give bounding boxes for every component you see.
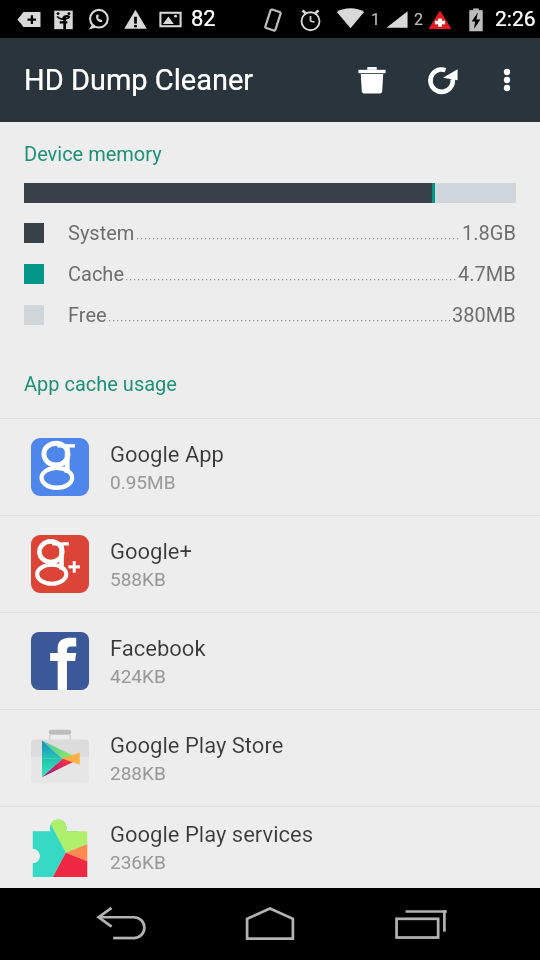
staticText: Google+ [110,539,192,565]
staticText: 288KB [110,762,166,784]
button[interactable]: Delete cache [348,56,396,104]
staticText: Google App [110,442,224,468]
staticText: 2 [414,10,423,29]
staticText: 1.8GB [462,221,516,244]
button[interactable]: Google App [0,419,540,515]
staticText: App cache usage [24,372,177,395]
staticText: Free [68,303,107,326]
staticText: 380MB [452,303,516,326]
button[interactable]: Back [88,890,156,958]
staticText: Device memory [24,142,162,165]
staticText: 236KB [110,851,166,873]
staticText: 1 [371,10,380,29]
button[interactable]: Refresh [419,56,467,104]
staticText: 2:26 [495,7,536,32]
button[interactable]: More options [483,56,531,104]
staticText: 4.7MB [458,262,516,285]
button[interactable]: Facebook [0,613,540,709]
staticText: 0.95MB [110,471,176,493]
button[interactable]: Recent apps [387,890,455,958]
staticText: 82 [191,6,216,32]
staticText: Google Play Store [110,733,284,759]
button[interactable]: Google+ [0,516,540,612]
button[interactable]: Google Play Store [0,710,540,806]
button[interactable]: Home [236,890,304,958]
staticText: Cache [68,262,124,285]
staticText: 424KB [110,665,166,687]
staticText: System [68,221,135,244]
staticText: Google Play services [110,822,314,848]
staticText: Facebook [110,636,206,662]
staticText: HD Dump Cleaner [24,63,254,97]
button[interactable]: Google Play services [0,807,540,888]
staticText: 588KB [110,568,166,590]
